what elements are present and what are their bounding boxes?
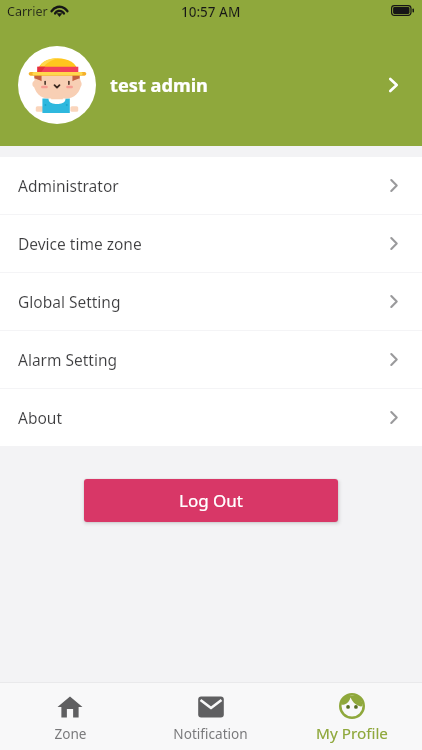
button[interactable]: Device time zone	[0, 215, 422, 272]
staticText: Notification	[173, 724, 248, 743]
button[interactable]: About	[0, 389, 422, 446]
staticText: Zone	[54, 724, 87, 743]
button[interactable]: Zone	[0, 682, 140, 750]
staticText: 10:57 AM	[181, 3, 241, 21]
button[interactable]: Alarm Setting	[0, 331, 422, 388]
staticText: Log Out	[179, 489, 243, 512]
staticText: test admin	[110, 73, 208, 98]
button[interactable]: My Profile	[281, 682, 422, 750]
button[interactable]: test admin profile	[0, 24, 422, 146]
staticText: Alarm Setting	[18, 349, 118, 370]
staticText: Global Setting	[18, 291, 121, 312]
button[interactable]: Administrator	[0, 157, 422, 214]
staticText: Administrator	[18, 175, 119, 196]
button[interactable]: Log Out	[84, 479, 338, 522]
staticText: About	[18, 407, 62, 428]
button[interactable]: Notification	[140, 682, 281, 750]
button[interactable]: Global Setting	[0, 273, 422, 330]
staticText: My Profile	[316, 723, 388, 744]
staticText: Device time zone	[18, 233, 142, 254]
staticText: Carrier	[7, 3, 48, 20]
